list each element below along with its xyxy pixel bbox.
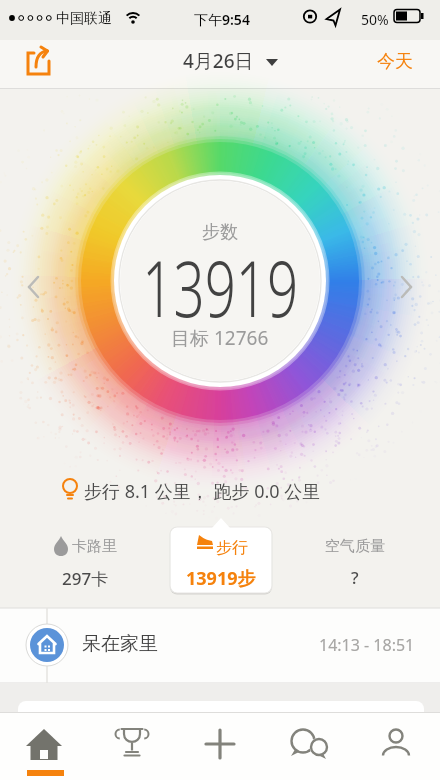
staticText: 14:13 - 18:51	[319, 634, 415, 656]
staticText: ?	[351, 566, 359, 589]
staticText: 中国联通	[56, 10, 112, 28]
staticText: 13919	[142, 234, 298, 340]
staticText: 步数	[202, 221, 238, 244]
staticText: 空气质量	[325, 537, 385, 556]
staticText: 今天	[377, 50, 413, 73]
staticText: 下午9:54	[194, 10, 250, 29]
staticText: 步行 8.1 公里， 跑步 0.0 公里	[84, 479, 321, 504]
staticText: 目标 12766	[171, 325, 269, 351]
staticText: 4月26日	[183, 48, 254, 74]
staticText: 卡路里	[72, 537, 117, 556]
staticText: 297卡	[62, 567, 109, 590]
staticText: 50%	[361, 10, 389, 29]
staticText: 呆在家里	[82, 632, 158, 656]
staticText: 13919步	[186, 566, 256, 591]
staticText: 步行	[216, 538, 248, 558]
